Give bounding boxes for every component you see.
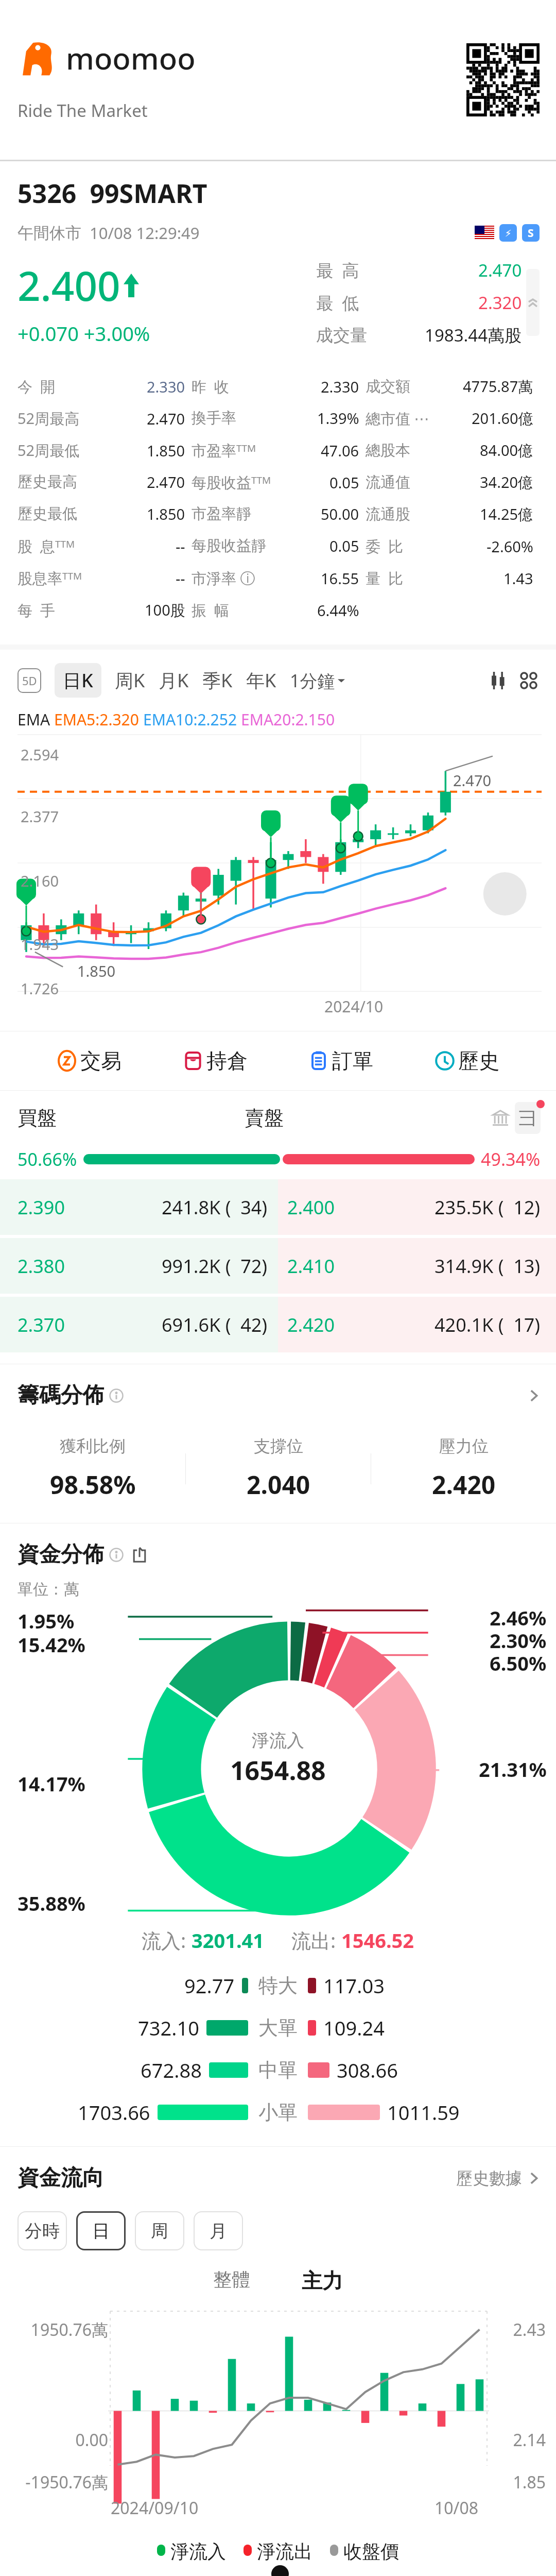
button[interactable]: 資金流向 xyxy=(0,2147,556,2197)
button[interactable]: 主力 xyxy=(291,2264,353,2298)
button[interactable]: Broker xyxy=(490,1108,511,1128)
button[interactable]: 2.370 xyxy=(0,1297,556,1352)
staticText: 314.9K ( 13) xyxy=(435,1253,541,1279)
staticText: 5326 99SMART xyxy=(18,176,207,211)
staticText: 單位：萬 xyxy=(18,1580,79,1599)
staticText: 歷史 xyxy=(458,1048,499,1074)
staticText: 52周最高 xyxy=(18,408,80,429)
staticText: 1.726 xyxy=(21,978,59,998)
staticText: 1.39% xyxy=(317,408,359,428)
button[interactable]: 季K xyxy=(202,663,233,698)
staticText: EMA20:2.150 xyxy=(241,709,335,730)
staticText: 2.380 xyxy=(18,1253,65,1279)
button[interactable]: 周 xyxy=(135,2211,184,2250)
staticText: 歷史最高 xyxy=(18,472,77,492)
staticText: 50.00 xyxy=(321,504,359,524)
staticText: 691.6K ( 42) xyxy=(162,1312,268,1337)
button[interactable]: 2.380 xyxy=(0,1238,556,1294)
staticText: 2.390 xyxy=(18,1195,65,1220)
staticText: 2.420 xyxy=(432,1468,496,1501)
staticText: 日K xyxy=(63,668,93,693)
staticText: 歷史數據 xyxy=(456,2168,522,2189)
staticText: EMA10:2.252 xyxy=(143,709,241,730)
staticText: 2.400 xyxy=(287,1195,335,1220)
button[interactable]: 周K xyxy=(115,663,145,698)
staticText: 420.1K ( 17) xyxy=(435,1312,541,1337)
staticText: 1950.76萬 xyxy=(10,2318,108,2341)
staticText: 15.42% xyxy=(18,1631,85,1658)
staticText: 241.8K ( 34) xyxy=(162,1195,268,1220)
staticText: 股 息ᵀᵀᴹ xyxy=(18,536,75,556)
staticText: 6.50% xyxy=(490,1650,547,1676)
staticText: 10/08 xyxy=(435,2497,479,2519)
staticText: 流通值 xyxy=(366,473,410,492)
button[interactable]: 年K xyxy=(246,663,276,698)
staticText: 2.470 xyxy=(453,770,492,790)
staticText: 1.943 xyxy=(21,934,59,954)
staticText: 98.58% xyxy=(50,1468,136,1501)
button[interactable]: Candle type xyxy=(486,669,510,692)
staticText: 2.46% xyxy=(490,1604,547,1631)
button[interactable]: 日K xyxy=(55,663,101,698)
staticText: 2.470 xyxy=(478,259,522,282)
staticText: 每股收益靜 xyxy=(192,536,266,555)
button[interactable]: 資金分佈 xyxy=(0,1523,556,1568)
button[interactable]: Expand xyxy=(526,269,540,336)
button[interactable]: 歷史 xyxy=(430,1045,503,1077)
staticText: 1546.52 xyxy=(341,1927,414,1954)
staticText: 1654.88 xyxy=(230,1753,326,1788)
button[interactable]: 日 xyxy=(76,2211,126,2250)
staticText: 市盈率ᵀᵀᴹ xyxy=(192,440,256,461)
button[interactable]: 持倉 xyxy=(179,1045,252,1077)
staticText: 今 開 xyxy=(18,376,56,397)
button[interactable]: 整體 xyxy=(203,2264,260,2295)
staticText: 3201.41 xyxy=(192,1927,265,1954)
staticText: 2.470 xyxy=(147,472,185,492)
staticText: 分時 xyxy=(25,2220,60,2242)
staticText: 午間休市 xyxy=(18,223,81,243)
staticText: 4775.87萬 xyxy=(463,376,533,397)
staticText: 2.377 xyxy=(21,806,59,826)
staticText: 振 幅 xyxy=(192,600,230,620)
staticText: 月 xyxy=(210,2220,227,2242)
staticText: 季K xyxy=(202,668,233,693)
staticText: 壓力位 xyxy=(439,1436,489,1456)
staticText: 14.25億 xyxy=(480,504,533,524)
staticText: 1983.44萬股 xyxy=(425,324,522,347)
staticText: 年K xyxy=(246,668,276,693)
staticText: 50.66% xyxy=(18,1147,77,1171)
staticText: 49.34% xyxy=(481,1147,541,1171)
staticText: 訂單 xyxy=(332,1048,373,1074)
button[interactable]: 彐 xyxy=(515,1102,541,1134)
staticText: 34.20億 xyxy=(480,472,533,493)
staticText: 月K xyxy=(159,668,189,693)
staticText: 獲利比例 xyxy=(60,1436,126,1456)
staticText: 16.55 xyxy=(321,568,359,588)
button[interactable]: 月K xyxy=(159,663,189,698)
staticText: 109.24 xyxy=(323,2014,385,2041)
button[interactable]: 訂單 xyxy=(304,1045,377,1077)
button[interactable]: 籌碼分佈 xyxy=(0,1364,556,1414)
button[interactable]: 月 xyxy=(194,2211,243,2250)
staticText: 1.95% xyxy=(18,1607,75,1634)
staticText: 周 xyxy=(151,2220,168,2242)
staticText: 流入: xyxy=(142,1927,192,1954)
staticText: 6.44% xyxy=(317,600,359,620)
button[interactable]: 分時 xyxy=(18,2211,67,2250)
button[interactable]: Layout xyxy=(517,669,541,692)
staticText: 1.850 xyxy=(77,961,116,981)
staticText: 2.30% xyxy=(490,1627,547,1654)
staticText: 流通股 xyxy=(366,505,410,524)
button[interactable]: 1分鐘 xyxy=(290,664,345,697)
staticText: 2.14 xyxy=(489,2429,546,2451)
button[interactable]: 5 day xyxy=(18,668,41,693)
staticText: 彐 xyxy=(519,1107,536,1129)
button[interactable]: 2.390 xyxy=(0,1179,556,1235)
staticText: 小單 xyxy=(258,2100,298,2125)
staticText: 每股收益ᵀᵀᴹ xyxy=(192,472,271,493)
staticText: 流出: xyxy=(291,1927,341,1954)
staticText: 2.320 xyxy=(478,291,522,314)
staticText: 2024/09/10 xyxy=(111,2497,199,2519)
button[interactable]: 交易 xyxy=(53,1045,126,1077)
staticText: 10/08 12:29:49 xyxy=(90,222,200,244)
